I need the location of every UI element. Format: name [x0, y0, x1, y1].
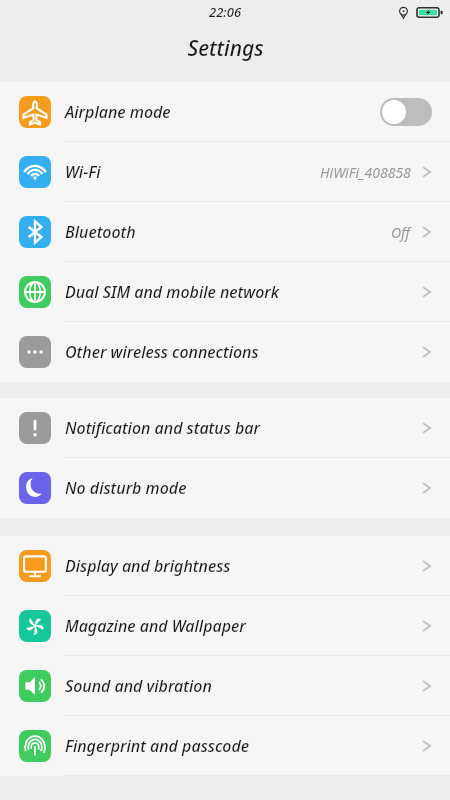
- staticText: Notification and status bar: [65, 417, 260, 439]
- button[interactable]: Other wireless connections: [0, 322, 450, 382]
- staticText: Bluetooth: [65, 221, 136, 243]
- staticText: Wi-Fi: [65, 161, 101, 183]
- staticText: Sound and vibration: [65, 675, 212, 697]
- staticText: Display and brightness: [65, 555, 231, 577]
- staticText: HiWiFi_408858: [320, 163, 411, 182]
- button[interactable]: Wi-Fi: [0, 142, 450, 202]
- button[interactable]: Notification and status bar: [0, 398, 450, 458]
- staticText: Fingerprint and passcode: [65, 735, 249, 757]
- staticText: Off: [391, 223, 411, 242]
- staticText: Airplane mode: [65, 101, 171, 123]
- staticText: 22:06: [209, 3, 242, 21]
- button[interactable]: No disturb mode: [0, 458, 450, 518]
- button[interactable]: Display and brightness: [0, 536, 450, 596]
- staticText: Other wireless connections: [65, 341, 259, 363]
- button[interactable]: Dual SIM and mobile network: [0, 262, 450, 322]
- button[interactable]: Sound and vibration: [0, 656, 450, 716]
- button[interactable]: Magazine and Wallpaper: [0, 596, 450, 656]
- staticText: Magazine and Wallpaper: [65, 615, 246, 637]
- button[interactable]: Airplane mode: [0, 82, 450, 142]
- button[interactable]: Fingerprint and passcode: [0, 716, 450, 776]
- staticText: Dual SIM and mobile network: [65, 281, 279, 303]
- staticText: Settings: [187, 34, 264, 63]
- button[interactable]: Airplane mode toggle: [380, 98, 432, 126]
- staticText: No disturb mode: [65, 477, 187, 499]
- button[interactable]: Bluetooth: [0, 202, 450, 262]
